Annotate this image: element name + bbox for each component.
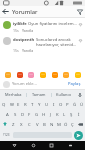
button[interactable]: C <box>25 119 33 129</box>
button[interactable]: B <box>41 119 48 129</box>
button[interactable]: O <box>57 99 64 109</box>
button[interactable]: V <box>33 119 41 129</box>
button[interactable]: U <box>43 99 50 109</box>
staticText: Q <box>2 101 6 107</box>
staticText: Ğ <box>73 101 77 107</box>
staticText: W <box>10 101 14 107</box>
staticText: Kullanıcı <box>56 92 72 97</box>
staticText: Y <box>38 101 41 107</box>
staticText: Yorum ekle... <box>12 81 37 87</box>
button[interactable]: Shift <box>0 119 9 129</box>
button[interactable]: Merhaba <box>1 90 26 99</box>
button[interactable]: K <box>54 109 61 119</box>
button[interactable]: Emoji <box>38 70 47 79</box>
button[interactable]: Filter <box>74 6 85 17</box>
staticText: Paylaş <box>68 81 81 87</box>
button[interactable]: Emoji <box>61 70 70 79</box>
button[interactable]: W <box>8 99 15 109</box>
button[interactable]: Y <box>36 99 43 109</box>
button[interactable]: Ü <box>78 99 85 109</box>
staticText: Oyun fiyatlarını incelemem gerek <box>28 21 77 27</box>
staticText: Tamam <box>32 92 46 97</box>
button[interactable]: Kullanıcı <box>52 90 76 99</box>
staticText: D <box>21 111 25 117</box>
button[interactable]: Yanıtla <box>22 48 34 53</box>
staticText: X <box>20 121 23 127</box>
staticText: İ <box>78 111 80 117</box>
button[interactable]: X <box>17 119 25 129</box>
button[interactable]: H <box>40 109 47 119</box>
button[interactable]: T <box>29 99 36 109</box>
staticText: K <box>56 111 59 117</box>
button[interactable]: S <box>11 109 19 119</box>
button[interactable]: D <box>19 109 26 119</box>
button[interactable]: L <box>61 109 68 119</box>
staticText: Merhaba <box>5 92 22 97</box>
button[interactable]: Yorum ekle... <box>12 79 67 89</box>
button[interactable]: Home <box>29 141 38 150</box>
button[interactable]: Send <box>74 131 83 140</box>
button[interactable]: Paylaş <box>67 79 82 89</box>
button[interactable]: Yanıtla <box>22 28 34 33</box>
staticText: M <box>57 121 61 127</box>
button[interactable]: Recents <box>47 141 56 150</box>
staticText: O <box>59 101 63 107</box>
button[interactable]: Tamam <box>27 90 51 99</box>
button[interactable]: ?123 <box>2 129 11 141</box>
staticText: Ü <box>80 101 84 107</box>
button[interactable]: Voice input <box>76 90 84 99</box>
staticText: Sonuclarzd anıcak hazırlanıyor, sitenide… <box>36 37 77 47</box>
button[interactable]: dostpenth <box>0 34 85 54</box>
button[interactable]: iyilikfe <box>0 18 85 34</box>
staticText: J <box>50 111 52 117</box>
staticText: N <box>50 121 54 127</box>
staticText: C <box>28 121 31 127</box>
staticText: E <box>17 101 20 107</box>
staticText: T <box>31 101 34 107</box>
button[interactable]: Like <box>77 21 83 27</box>
button[interactable]: Back <box>0 6 11 17</box>
button[interactable]: Emoji <box>50 70 59 79</box>
button[interactable]: Back <box>10 141 19 150</box>
button[interactable]: M <box>55 119 62 129</box>
staticText: I <box>53 101 55 107</box>
button[interactable]: Emoji <box>15 70 24 79</box>
staticText: A <box>6 111 9 117</box>
staticText: ?123 <box>3 133 10 137</box>
staticText: P <box>66 101 69 107</box>
staticText: U <box>45 101 49 107</box>
button[interactable]: R <box>22 99 29 109</box>
staticText: Ş <box>70 111 73 117</box>
staticText: L <box>63 111 66 117</box>
staticText: 15s <box>13 48 19 53</box>
button[interactable]: G <box>33 109 40 119</box>
button[interactable]: İ <box>75 109 82 119</box>
staticText: B <box>43 121 46 127</box>
button[interactable]: Ğ <box>71 99 78 109</box>
button[interactable]: A <box>3 109 11 119</box>
staticText: V <box>36 121 39 127</box>
button[interactable]: Ö <box>62 119 69 129</box>
button[interactable]: Q <box>0 99 8 109</box>
button[interactable]: N <box>48 119 55 129</box>
button[interactable]: J <box>47 109 54 119</box>
button[interactable]: Emoji <box>26 70 35 79</box>
button[interactable]: Emoji <box>3 70 12 79</box>
button[interactable]: E <box>15 99 22 109</box>
button[interactable]: F <box>26 109 33 119</box>
button[interactable]: Ş <box>68 109 75 119</box>
staticText: dostpenth <box>13 37 35 43</box>
button[interactable]: Ç <box>69 119 76 129</box>
button[interactable]: I <box>50 99 57 109</box>
staticText: 15s <box>13 28 19 33</box>
button[interactable]: Backspace <box>76 119 85 129</box>
staticText: Ç <box>71 121 74 127</box>
button[interactable]: P <box>64 99 71 109</box>
button[interactable]: Like <box>77 37 83 43</box>
button[interactable]: Emoji <box>73 70 82 79</box>
staticText: F <box>28 111 31 117</box>
staticText: Z <box>12 121 15 127</box>
button[interactable]: Keyboard <box>66 141 75 150</box>
button[interactable]: Z <box>9 119 17 129</box>
